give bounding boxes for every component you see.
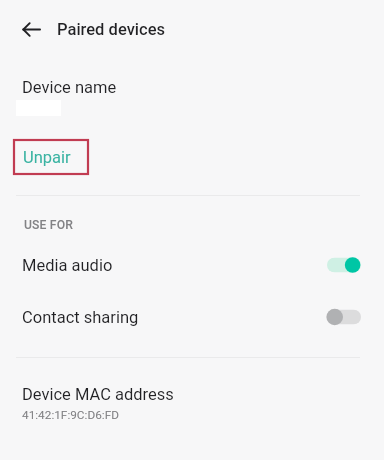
- button[interactable]: Navigate up: [11, 9, 51, 49]
- staticText: Device name: [22, 78, 117, 97]
- staticText: Device MAC address: [22, 385, 174, 404]
- button[interactable]: Media audio: [0, 241, 384, 289]
- staticText: USE FOR: [24, 218, 74, 232]
- staticText: Unpair: [23, 148, 71, 167]
- button[interactable]: Contact sharing: [0, 293, 384, 341]
- button[interactable]: Device MAC address: [0, 385, 384, 433]
- staticText: Contact sharing: [22, 308, 139, 327]
- staticText: 41:42:1F:9C:D6:FD: [22, 408, 119, 422]
- staticText: Media audio: [22, 256, 113, 275]
- staticText: Paired devices: [57, 20, 166, 39]
- button[interactable]: Unpair: [14, 140, 88, 174]
